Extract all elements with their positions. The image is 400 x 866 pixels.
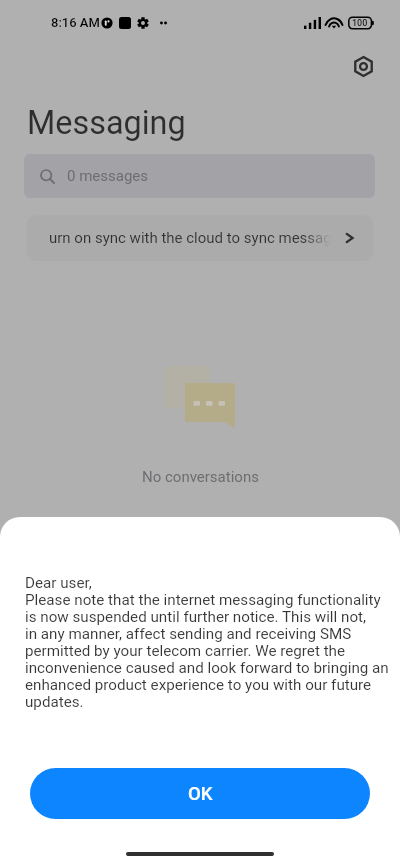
staticText: 8:16 AM — [51, 15, 100, 30]
staticText: OK — [188, 783, 213, 805]
staticText: No conversations — [142, 468, 259, 486]
button[interactable]: Settings — [346, 49, 380, 83]
staticText: urn on sync with the cloud to sync messa… — [49, 229, 331, 247]
button[interactable]: urn on sync with the cloud to sync messa… — [27, 215, 373, 261]
staticText: 0 messages — [67, 167, 149, 185]
staticText: Messaging — [27, 104, 186, 142]
staticText: Dear user, Please note that the internet… — [25, 574, 389, 711]
button[interactable]: 0 messages — [24, 154, 375, 198]
staticText: 100 — [352, 18, 368, 29]
button[interactable]: OK — [30, 768, 370, 819]
